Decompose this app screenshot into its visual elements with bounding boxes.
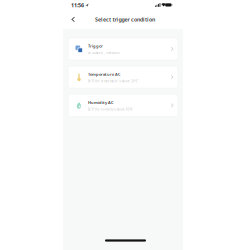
button[interactable]: Trigger bbox=[68, 38, 178, 60]
button[interactable]: Temperature AC bbox=[68, 66, 178, 88]
staticText: Ex:'If the humidity is above 80%' bbox=[88, 108, 133, 111]
staticText: condition bbox=[131, 16, 155, 23]
staticText: Ex:'If the temperature is above 28°C' bbox=[88, 79, 139, 83]
staticText: 11:56 bbox=[71, 2, 84, 9]
staticText: Ex:'Location','Time&Geo' bbox=[88, 51, 121, 55]
staticText: trigger bbox=[112, 16, 129, 23]
staticText: Temperature AC bbox=[88, 71, 121, 77]
button[interactable]: Humidity AC bbox=[68, 94, 178, 116]
staticText: Select bbox=[95, 16, 111, 23]
button[interactable]: Back bbox=[69, 14, 77, 25]
staticText: Humidity AC bbox=[88, 100, 114, 105]
staticText: Trigger bbox=[88, 43, 103, 49]
